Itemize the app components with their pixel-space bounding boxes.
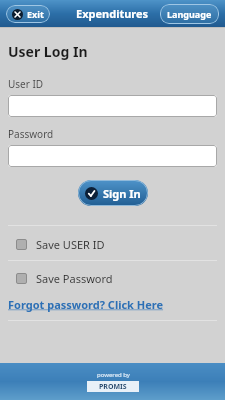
staticText: User ID xyxy=(8,77,44,91)
staticText: Exit xyxy=(27,8,44,20)
button[interactable]: Save Password xyxy=(8,269,217,288)
staticText: Password xyxy=(8,127,54,141)
button[interactable]: Save USER ID xyxy=(8,235,217,254)
staticText: Save USER ID xyxy=(36,237,105,252)
staticText: Expenditures xyxy=(76,6,149,21)
staticText: User Log In xyxy=(8,42,88,61)
button[interactable] xyxy=(8,95,217,117)
staticText: Save Password xyxy=(36,271,113,286)
staticText: Sign In xyxy=(103,186,141,201)
button[interactable]: Forgot password? Click Here xyxy=(8,295,217,314)
staticText: PROMIS xyxy=(99,382,127,392)
button[interactable] xyxy=(8,145,217,167)
staticText: powered by xyxy=(97,371,130,379)
staticText: Forgot password? Click Here xyxy=(8,297,164,312)
button[interactable]: Exit xyxy=(6,5,50,23)
button[interactable]: Sign In xyxy=(78,180,148,206)
button[interactable]: Language xyxy=(160,4,219,24)
staticText: Language xyxy=(167,8,212,20)
